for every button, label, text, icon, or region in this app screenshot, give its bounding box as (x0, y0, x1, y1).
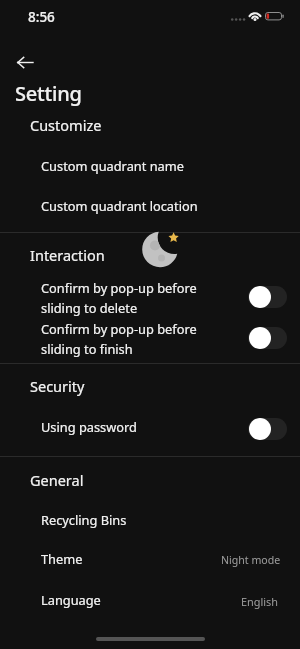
staticText: Using password (41, 418, 137, 435)
button[interactable] (0, 587, 300, 627)
staticText: Language (41, 591, 101, 608)
button[interactable] (0, 194, 300, 234)
staticText: 8:56 (28, 8, 55, 26)
button[interactable]: Back (11, 48, 39, 76)
staticText: Interaction (30, 245, 105, 265)
button[interactable] (0, 408, 300, 450)
staticText: Recycling Bins (41, 511, 127, 528)
button[interactable] (0, 154, 300, 194)
button[interactable] (0, 112, 300, 154)
staticText: Setting (15, 80, 82, 107)
button[interactable]: Toggle (248, 418, 287, 440)
button[interactable] (0, 276, 300, 320)
button[interactable]: Toggle (248, 286, 287, 308)
button[interactable] (0, 547, 300, 587)
staticText: Custom quadrant name (41, 157, 184, 174)
button[interactable] (0, 320, 300, 364)
staticText: Confirm by pop-up before sliding to fini… (41, 320, 197, 358)
button[interactable] (0, 507, 300, 547)
staticText: Theme (41, 550, 83, 567)
staticText: General (30, 470, 84, 490)
staticText: Custom quadrant location (41, 197, 198, 214)
staticText: Customize (30, 115, 102, 135)
staticText: English (241, 594, 279, 609)
staticText: Confirm by pop-up before sliding to dele… (41, 279, 197, 317)
button[interactable]: Toggle (248, 327, 287, 349)
staticText: Security (30, 376, 85, 396)
staticText: Night mode (221, 553, 281, 567)
